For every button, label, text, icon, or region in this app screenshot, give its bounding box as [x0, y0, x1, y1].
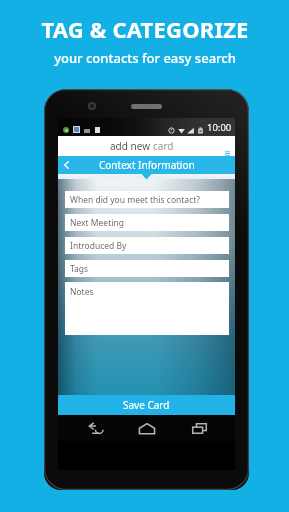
button[interactable]: Next Meeting: [65, 214, 229, 231]
button[interactable]: Notes: [65, 282, 229, 335]
button[interactable]: add new: [58, 136, 235, 156]
button[interactable]: Save Card: [58, 395, 235, 415]
button[interactable]: Menu: [225, 151, 230, 156]
button[interactable]: When did you meet this contact?: [65, 191, 229, 208]
staticText: Introduced By: [70, 240, 127, 252]
staticText: Context Information: [99, 158, 195, 172]
staticText: TAG & CATEGORIZE: [41, 14, 249, 44]
button[interactable]: Back: [86, 419, 104, 437]
staticText: 10:00: [207, 121, 232, 134]
button[interactable]: Introduced By: [65, 237, 229, 254]
button[interactable]: Recent apps: [190, 419, 208, 437]
button[interactable]: Tags: [65, 260, 229, 277]
staticText: card: [153, 139, 174, 153]
staticText: add new: [110, 139, 153, 153]
staticText: Save Card: [123, 398, 170, 412]
button[interactable]: Home: [137, 419, 157, 439]
staticText: Notes: [70, 286, 94, 298]
staticText: When did you meet this contact?: [70, 194, 200, 206]
staticText: Tags: [70, 263, 89, 275]
button[interactable]: Back: [62, 160, 72, 170]
staticText: Next Meeting: [70, 217, 124, 229]
staticText: your contacts for easy search: [54, 49, 236, 67]
